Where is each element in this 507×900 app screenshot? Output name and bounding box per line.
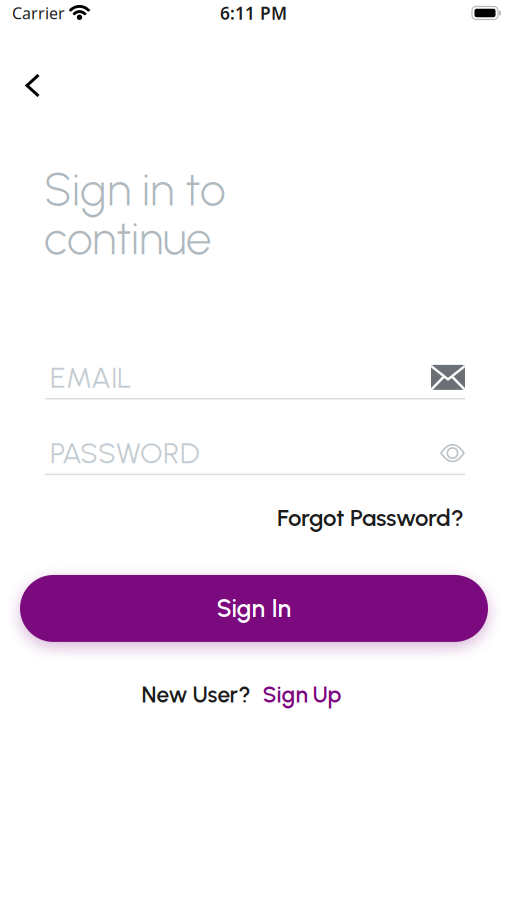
button[interactable]: Sign Up bbox=[250, 681, 341, 708]
secureTextField[interactable]: PASSWORD bbox=[0, 399, 507, 475]
staticText: New User? bbox=[141, 681, 250, 708]
staticText: continue bbox=[44, 211, 212, 266]
staticText: EMAIL bbox=[50, 360, 132, 395]
button[interactable]: Forgot Password? bbox=[277, 503, 464, 532]
staticText: 6:11 PM bbox=[220, 1, 287, 24]
button[interactable]: Back bbox=[15, 64, 50, 107]
textField[interactable]: EMAIL bbox=[0, 266, 507, 399]
staticText: Forgot Password? bbox=[277, 503, 464, 532]
button[interactable]: Sign In bbox=[20, 575, 488, 642]
staticText: Sign Up bbox=[262, 681, 341, 708]
staticText: Carrier bbox=[12, 2, 65, 24]
button[interactable]: Show password bbox=[441, 446, 465, 461]
staticText: PASSWORD bbox=[50, 435, 200, 471]
staticText: Sign In bbox=[216, 594, 291, 623]
staticText: Sign in to bbox=[44, 162, 226, 217]
